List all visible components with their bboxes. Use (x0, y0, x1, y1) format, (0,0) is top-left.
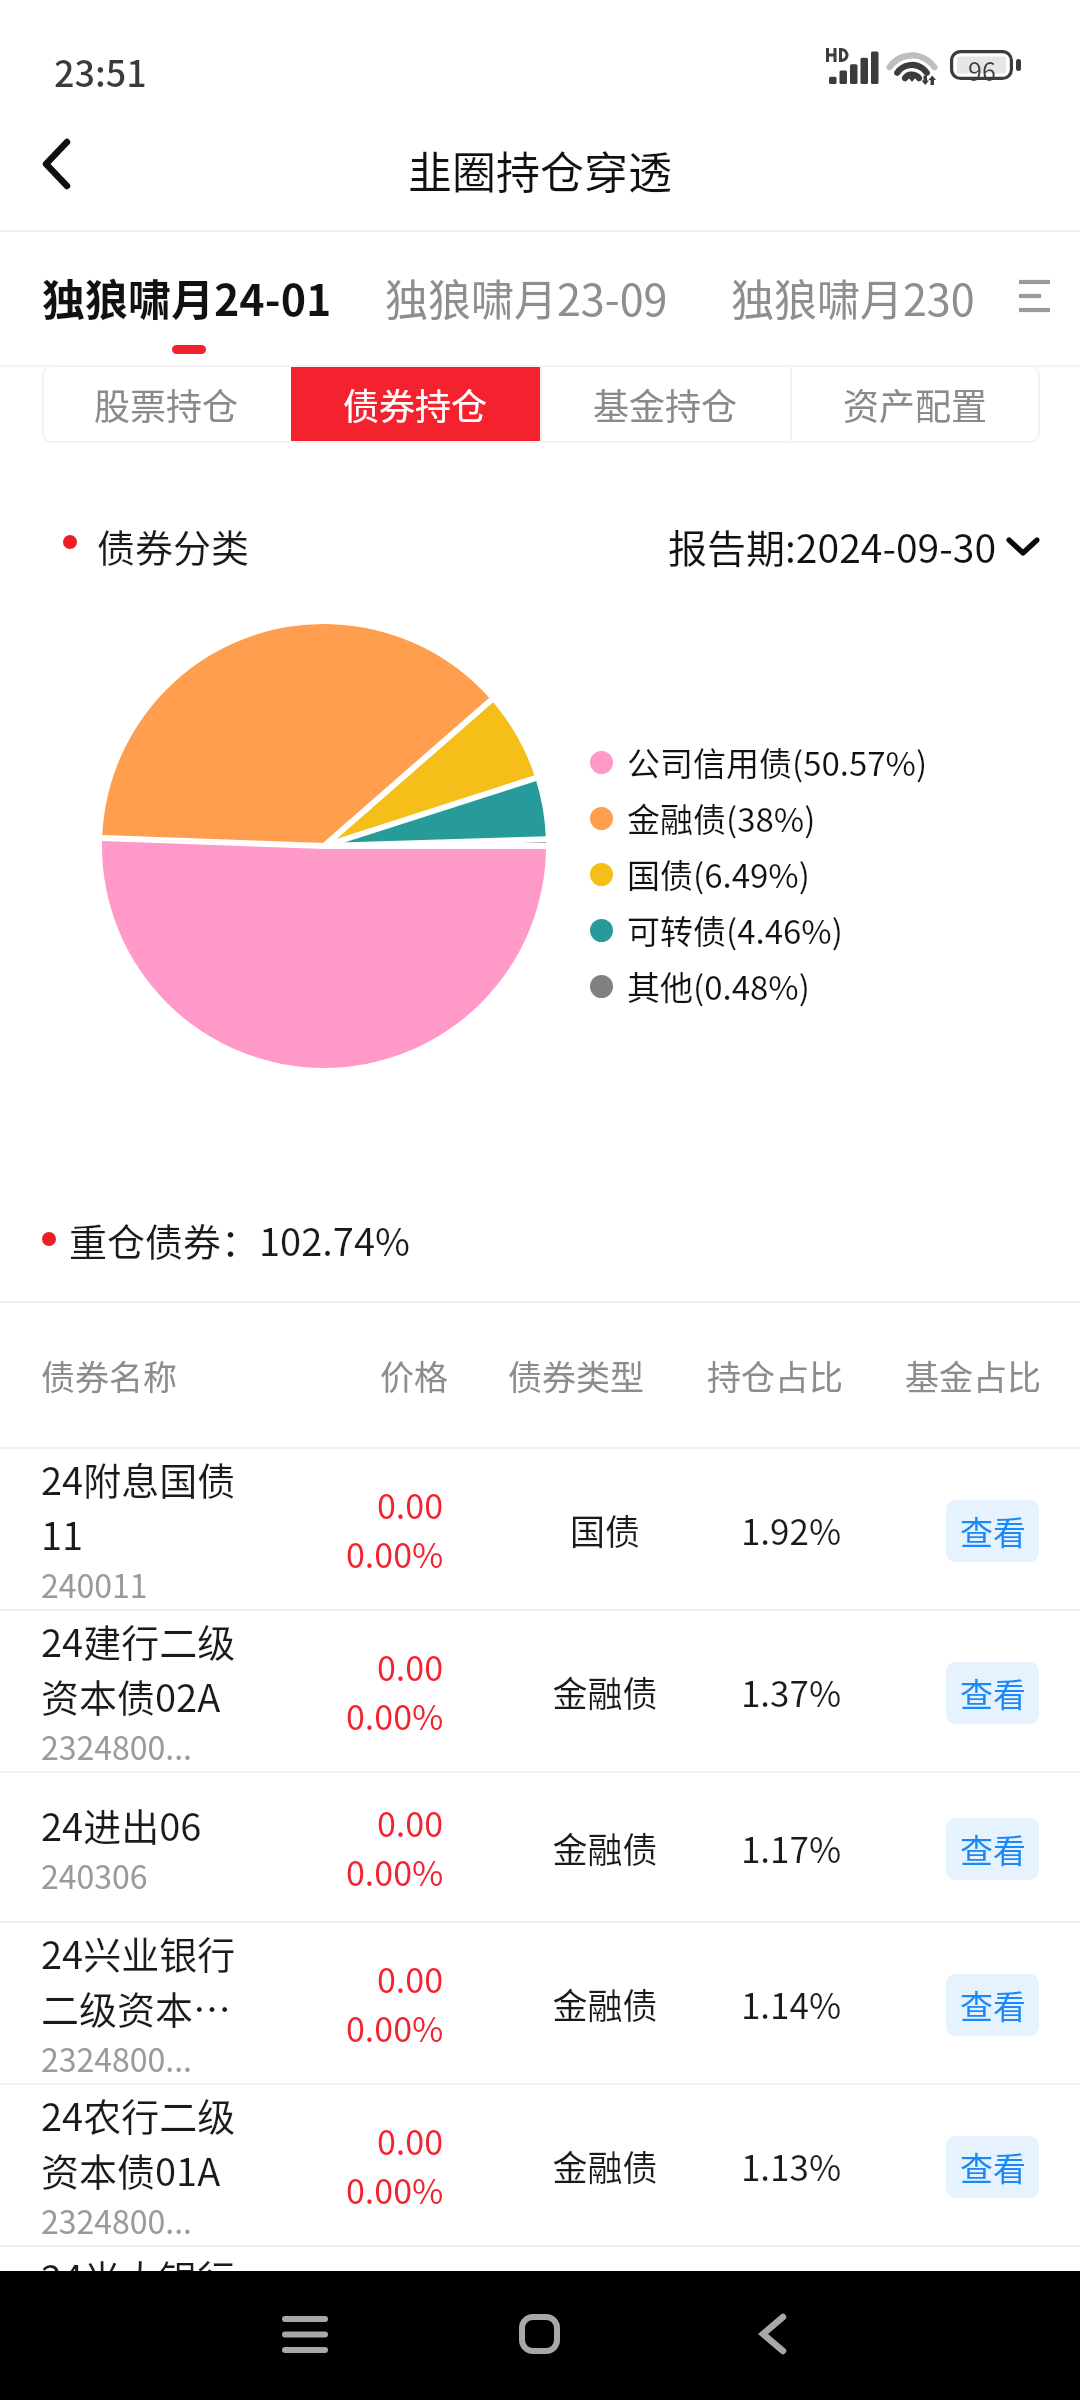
staticText: 0.00 (377, 1642, 444, 1691)
staticText: 1.92% (691, 1504, 891, 1555)
staticText: 持仓占比 (675, 1351, 875, 1400)
staticText: 1.13% (691, 2140, 891, 2191)
staticText: 96 (966, 52, 998, 88)
staticText: 0.00 (377, 1954, 444, 2003)
button[interactable]: 资产配置 (790, 365, 1040, 443)
staticText: 公司信用债(50.57%) (627, 738, 928, 786)
button[interactable]: 股票持仓 (42, 365, 291, 443)
staticText: 0.00 (377, 1480, 444, 1529)
staticText: 股票持仓 (94, 378, 239, 430)
staticText: 2324800... (41, 2035, 193, 2081)
staticText: 重仓债券：102.74% (69, 1212, 411, 1267)
staticText: 1.14% (691, 1978, 891, 2029)
staticText: 1.09% (691, 2302, 891, 2353)
staticText: 0.00% (346, 1529, 444, 1578)
staticText: 24农行二级 (41, 2087, 236, 2142)
staticText: 0.00 (377, 1798, 444, 1847)
button[interactable]: Back (0, 104, 115, 224)
staticText: 报告期:2024-09-30 (668, 518, 997, 574)
staticText: 24进出06 (41, 1797, 202, 1852)
staticText: 金融债 (505, 2140, 705, 2191)
staticText: 查看 (960, 1507, 1026, 1555)
staticText: 24兴业银行 (41, 1925, 236, 1980)
staticText: 24光大银行 (41, 2249, 236, 2304)
button[interactable]: 24建行二级 (0, 1611, 1080, 1771)
staticText: 债券分类 (97, 518, 250, 573)
staticText: 2324800... (41, 1723, 193, 1769)
staticText: 金融债 (505, 1666, 705, 1717)
staticText: 韭圈持仓穿透 (408, 138, 672, 202)
button[interactable]: 报告期:2024-09-30 (668, 518, 1040, 574)
button[interactable]: 查看 (946, 2136, 1039, 2198)
button[interactable]: Home (479, 2274, 599, 2394)
staticText: 11 (41, 1506, 84, 1561)
staticText: 资本债01A (41, 2142, 221, 2197)
button[interactable]: 债券持仓 (291, 365, 540, 443)
staticText: 查看 (960, 1669, 1026, 1717)
staticText: 240011 (41, 1561, 148, 1607)
staticText: 金融债 (505, 1822, 705, 1873)
staticText: 基金占比 (873, 1351, 1073, 1400)
staticText: 债券类型 (476, 1351, 676, 1400)
staticText: 1.17% (691, 1822, 891, 1873)
staticText: 国债(6.49%) (627, 850, 810, 898)
button[interactable]: 查看 (946, 1818, 1039, 1880)
staticText: 0.00% (346, 2165, 444, 2214)
button[interactable]: All funds (990, 234, 1080, 352)
button[interactable]: 基金持仓 (540, 365, 790, 443)
staticText: 金融债 (505, 1978, 705, 2029)
staticText: 24附息国债 (41, 1451, 236, 1506)
staticText: 查看 (960, 1825, 1026, 1873)
staticText: 0.00% (346, 1847, 444, 1896)
staticText: 债券名称 (41, 1351, 177, 1400)
staticText: 价格 (314, 1351, 514, 1400)
staticText: 2324800... (41, 2197, 193, 2243)
staticText: 债券持仓 (343, 378, 488, 430)
staticText: 0.00% (346, 2003, 444, 2052)
staticText: 240306 (41, 1852, 148, 1898)
button[interactable]: 独狼啸月24-01 (42, 266, 332, 328)
button[interactable]: 查看 (946, 1662, 1039, 1724)
staticText: 二级资本… (41, 1980, 232, 2035)
button[interactable]: 独狼啸月23-09 (385, 266, 668, 328)
staticText: 查看 (960, 2143, 1026, 2191)
staticText: 24建行二级 (41, 1613, 236, 1668)
staticText: 0.00 (377, 2116, 444, 2165)
button[interactable]: 24兴业银行 (0, 1923, 1080, 2083)
button[interactable]: 独狼啸月230 (731, 266, 975, 328)
button[interactable]: Recents (245, 2274, 365, 2394)
button[interactable]: 查看 (946, 1500, 1039, 1562)
staticText: 23:51 (54, 45, 147, 97)
button[interactable]: Back (713, 2274, 833, 2394)
staticText: 金融债 (505, 2302, 705, 2353)
staticText: 0.00% (346, 1691, 444, 1740)
staticText: 国债 (505, 1504, 705, 1555)
staticText: 基金持仓 (593, 378, 738, 430)
staticText: 资产配置 (843, 378, 988, 430)
button[interactable]: 查看 (946, 1974, 1039, 2036)
button[interactable]: 24进出06 (0, 1773, 1080, 1921)
button[interactable]: 24农行二级 (0, 2085, 1080, 2245)
staticText: 其他(0.48%) (627, 962, 810, 1010)
staticText: 独狼啸月24-01 (42, 266, 332, 328)
staticText: 可转债(4.46%) (627, 906, 843, 954)
staticText: 查看 (960, 1981, 1026, 2029)
staticText: 金融债(38%) (627, 794, 816, 842)
button[interactable]: 24附息国债 (0, 1449, 1080, 1609)
staticText: 资本债02A (41, 1668, 221, 1723)
button[interactable]: 24光大银行 (0, 2247, 1080, 2400)
staticText: 1.37% (691, 1666, 891, 1717)
